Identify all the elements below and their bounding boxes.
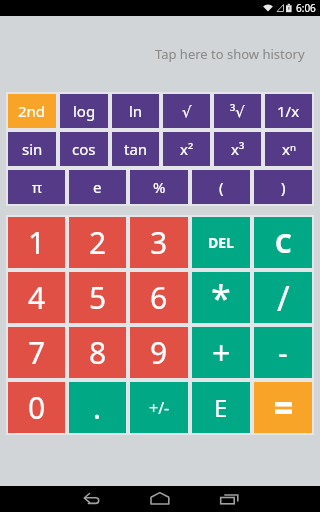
staticText: 0: [28, 387, 46, 428]
staticText: 1/x: [277, 101, 300, 121]
staticText: +: [212, 331, 231, 375]
button[interactable]: log: [60, 94, 108, 128]
button[interactable]: 9: [130, 327, 188, 378]
staticText: ³√: [230, 101, 245, 121]
staticText: C: [275, 225, 292, 260]
button[interactable]: [0, 486, 106, 512]
staticText: tan: [124, 139, 148, 159]
staticText: +/-: [149, 397, 170, 419]
button[interactable]: .: [69, 382, 126, 433]
staticText: sin: [22, 139, 43, 159]
staticText: 4: [28, 277, 46, 318]
button[interactable]: (: [192, 170, 250, 204]
button[interactable]: %: [130, 170, 188, 204]
button[interactable]: π: [8, 170, 65, 204]
staticText: *: [211, 273, 231, 322]
staticText: E: [214, 391, 228, 424]
staticText: x³: [231, 139, 245, 159]
button[interactable]: [106, 486, 213, 512]
staticText: √: [182, 103, 192, 120]
button[interactable]: Tap here to show history: [0, 16, 320, 92]
button[interactable]: -: [254, 327, 312, 378]
staticText: (: [219, 177, 224, 197]
staticText: ): [281, 177, 286, 197]
button[interactable]: cos: [60, 132, 108, 166]
staticText: /: [277, 275, 290, 321]
staticText: .: [93, 387, 102, 428]
button[interactable]: 4: [8, 272, 65, 323]
staticText: %: [153, 177, 166, 197]
button[interactable]: 2: [69, 217, 126, 268]
staticText: xⁿ: [282, 139, 296, 159]
button[interactable]: 6: [130, 272, 188, 323]
staticText: 1: [28, 222, 46, 263]
staticText: 9: [150, 332, 168, 373]
button[interactable]: 2nd: [8, 94, 56, 128]
staticText: 2nd: [18, 101, 46, 121]
button[interactable]: 7: [8, 327, 65, 378]
staticText: DEL: [208, 233, 234, 252]
button[interactable]: 1/x: [265, 94, 312, 128]
button[interactable]: E: [192, 382, 250, 433]
staticText: Tap here to show history: [155, 45, 305, 63]
button[interactable]: +/-: [130, 382, 188, 433]
button[interactable]: 8: [69, 327, 126, 378]
staticText: -: [278, 332, 288, 373]
button[interactable]: e: [69, 170, 126, 204]
button[interactable]: +: [192, 327, 250, 378]
button[interactable]: x³: [214, 132, 261, 166]
staticText: 2: [89, 222, 107, 263]
button[interactable]: [213, 486, 320, 512]
button[interactable]: ): [254, 170, 312, 204]
staticText: 3: [150, 222, 168, 263]
button[interactable]: 0: [8, 382, 65, 433]
button[interactable]: tan: [112, 132, 159, 166]
button[interactable]: xⁿ: [265, 132, 312, 166]
button[interactable]: sin: [8, 132, 56, 166]
button[interactable]: 5: [69, 272, 126, 323]
staticText: 6: [150, 277, 168, 318]
button[interactable]: ln: [112, 94, 159, 128]
button[interactable]: ³√: [214, 94, 261, 128]
staticText: e: [93, 177, 102, 197]
staticText: 5: [89, 277, 107, 318]
button[interactable]: x²: [163, 132, 210, 166]
staticText: log: [73, 101, 96, 121]
button[interactable]: /: [254, 272, 312, 323]
button[interactable]: √: [163, 94, 210, 128]
button[interactable]: *: [192, 272, 250, 323]
button[interactable]: C: [254, 217, 312, 268]
staticText: 7: [28, 332, 46, 373]
button[interactable]: [254, 382, 312, 433]
staticText: 8: [89, 332, 107, 373]
staticText: π: [32, 177, 42, 197]
button[interactable]: DEL: [192, 217, 250, 268]
staticText: 6:06: [296, 1, 316, 15]
staticText: x²: [180, 139, 194, 159]
staticText: cos: [72, 139, 96, 159]
staticText: ln: [129, 101, 143, 121]
button[interactable]: 1: [8, 217, 65, 268]
button[interactable]: 3: [130, 217, 188, 268]
